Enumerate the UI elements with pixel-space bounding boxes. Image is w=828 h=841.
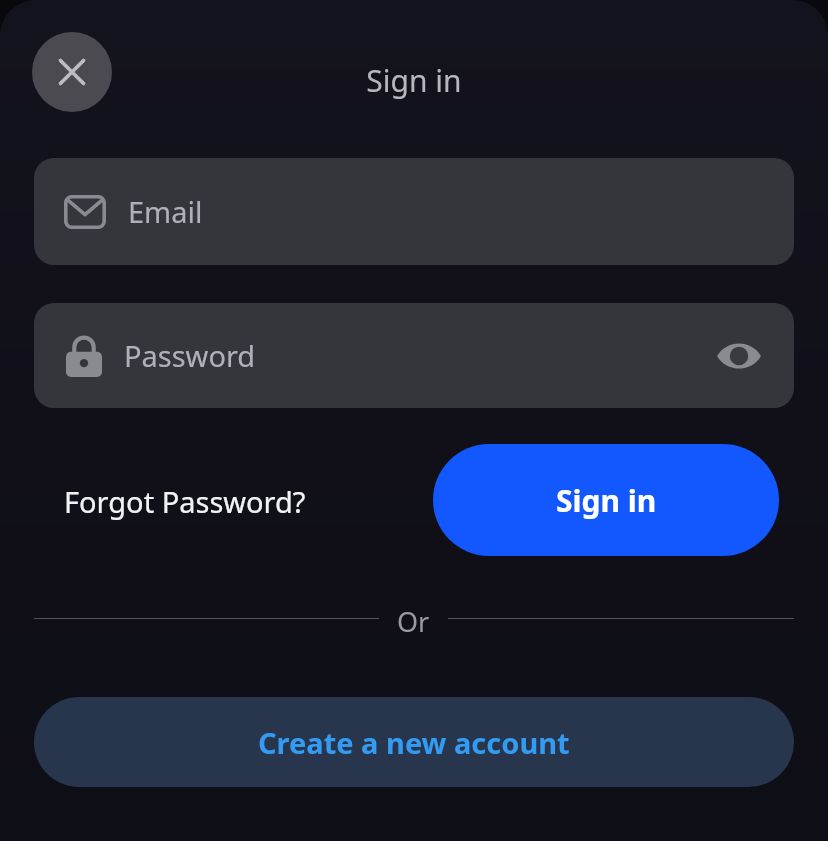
staticText: Sign in xyxy=(0,60,828,101)
button[interactable]: Show password xyxy=(710,327,768,385)
button[interactable]: Email xyxy=(34,158,794,265)
button[interactable]: Password xyxy=(34,303,794,408)
button[interactable]: Sign in xyxy=(433,444,779,556)
staticText: Sign in xyxy=(556,480,657,521)
button[interactable]: Close xyxy=(32,32,112,112)
staticText: Email xyxy=(128,192,203,231)
button[interactable]: Forgot Password? xyxy=(64,482,306,521)
staticText: Password xyxy=(124,336,256,375)
staticText: Or xyxy=(397,603,430,633)
staticText: Create a new account xyxy=(258,723,570,762)
button[interactable]: Create a new account xyxy=(34,697,794,787)
